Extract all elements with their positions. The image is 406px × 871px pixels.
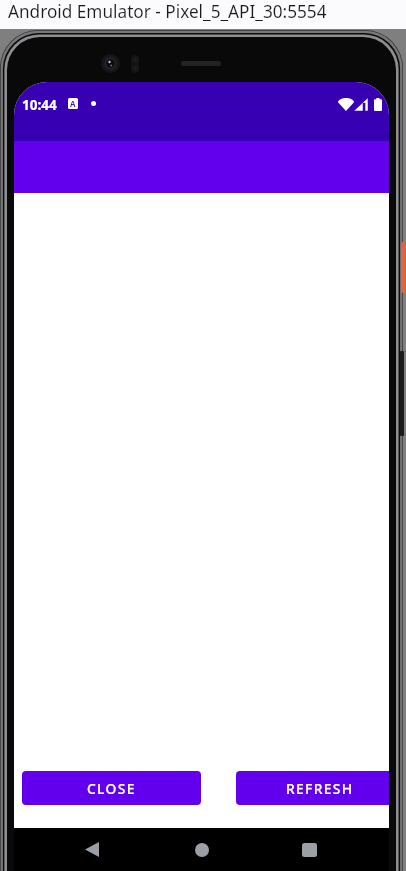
staticText: Android Emulator - Pixel_5_API_30:5554 [8, 0, 327, 21]
button[interactable]: Recent apps [281, 828, 337, 871]
button[interactable]: Home [174, 828, 230, 871]
button[interactable]: CLOSE [22, 771, 201, 805]
button[interactable]: Back [64, 828, 120, 871]
button[interactable]: REFRESH [236, 771, 389, 805]
staticText: 10:44 [22, 96, 57, 110]
staticText: A [70, 98, 76, 109]
staticText: CLOSE [87, 779, 136, 798]
staticText: REFRESH [286, 779, 354, 798]
